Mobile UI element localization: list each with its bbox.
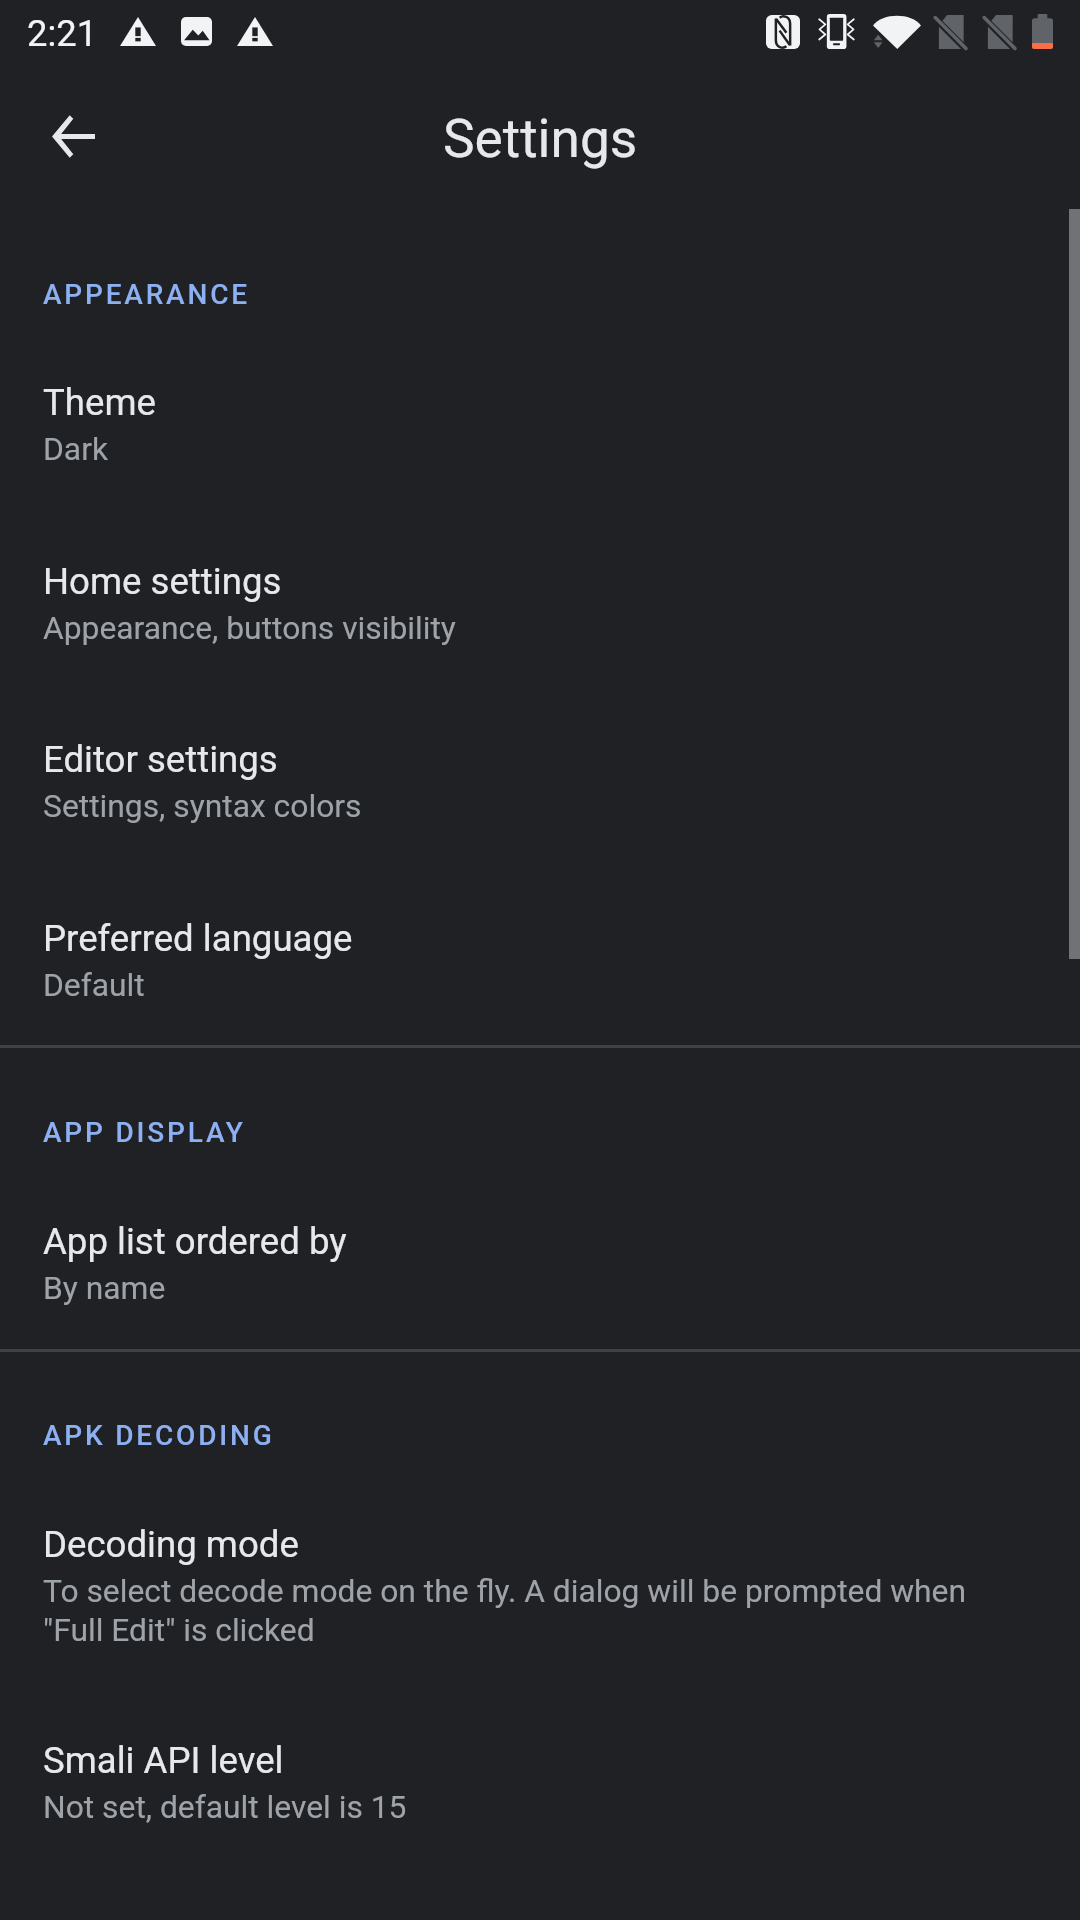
- staticText: By name: [43, 1269, 975, 1306]
- staticText: Smali API level: [43, 1739, 284, 1782]
- button[interactable]: Preferred language: [0, 885, 1080, 1064]
- staticText: Default: [43, 966, 975, 1003]
- staticText: Decoding mode: [43, 1523, 299, 1566]
- staticText: APPEARANCE: [43, 278, 250, 311]
- staticText: 2:21: [27, 12, 98, 55]
- staticText: Appearance, buttons visibility: [43, 609, 975, 646]
- staticText: APK DECODING: [43, 1419, 275, 1452]
- button[interactable]: Smali API level: [0, 1707, 1080, 1886]
- button[interactable]: Back: [25, 88, 121, 184]
- button[interactable]: Theme: [0, 349, 1080, 528]
- staticText: Settings, syntax colors: [43, 787, 975, 824]
- staticText: Preferred language: [43, 917, 353, 960]
- button[interactable]: Editor settings: [0, 706, 1080, 885]
- staticText: App list ordered by: [43, 1220, 347, 1263]
- staticText: To select decode mode on the fly. A dial…: [43, 1572, 975, 1649]
- staticText: Settings: [443, 108, 638, 170]
- staticText: Home settings: [43, 560, 282, 603]
- button[interactable]: Home settings: [0, 528, 1080, 707]
- staticText: Theme: [43, 381, 156, 424]
- staticText: Dark: [43, 430, 975, 467]
- button[interactable]: Decoding mode: [0, 1491, 1080, 1708]
- staticText: Not set, default level is 15: [43, 1788, 975, 1825]
- staticText: APP DISPLAY: [43, 1116, 246, 1149]
- staticText: Editor settings: [43, 738, 278, 781]
- button[interactable]: App list ordered by: [0, 1188, 1080, 1367]
